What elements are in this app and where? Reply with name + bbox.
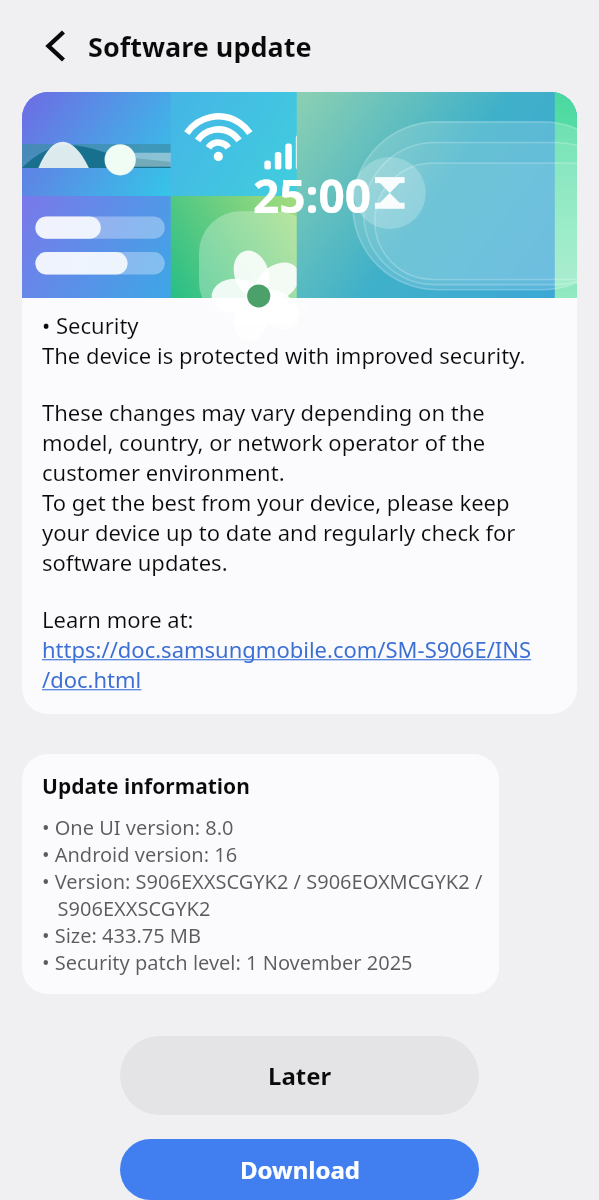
staticText: • Android version: 16 [42, 841, 238, 868]
staticText: your device up to date and regularly che… [42, 517, 516, 547]
staticText: Software update [88, 28, 312, 65]
staticText: Later [268, 1059, 332, 1092]
staticText: software updates. [42, 547, 228, 577]
staticText: • Security patch level: 1 November 2025 [42, 949, 413, 976]
staticText: These changes may vary depending on the [42, 397, 485, 427]
staticText: S906EXXSCGYK2 [42, 895, 211, 922]
button[interactable]: Back [32, 22, 80, 70]
staticText: Update information [42, 772, 250, 801]
staticText: The device is protected with improved se… [42, 340, 526, 370]
staticText: https://doc.samsungmobile.com/SM-S906E/I… [42, 634, 532, 664]
staticText: • Security [42, 310, 139, 340]
staticText: customer environment. [42, 457, 285, 487]
staticText: 25:00 [253, 164, 372, 227]
staticText: /doc.html [42, 664, 142, 694]
staticText: • Size: 433.75 MB [42, 922, 201, 949]
staticText: To get the best from your device, please… [42, 487, 510, 517]
staticText: model, country, or network operator of t… [42, 427, 486, 457]
button[interactable]: Download [120, 1139, 479, 1200]
button[interactable]: Later [120, 1036, 479, 1115]
staticText: Download [240, 1153, 360, 1186]
button[interactable]: https://doc.samsungmobile.com/SM-S906E/I… [42, 634, 532, 694]
staticText: • Version: S906EXXSCGYK2 / S906EOXMCGYK2… [42, 868, 483, 895]
staticText: Learn more at: [42, 604, 194, 634]
staticText: • One UI version: 8.0 [42, 814, 234, 841]
